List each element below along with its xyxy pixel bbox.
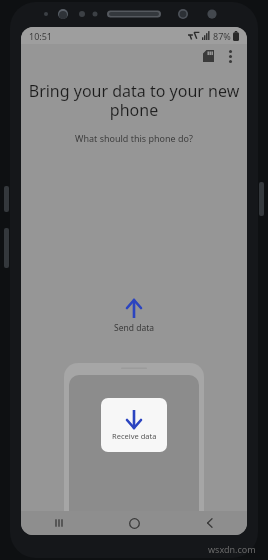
- staticText: Send data: [114, 322, 154, 334]
- staticText: Receive data: [112, 431, 157, 441]
- button[interactable]: Back: [172, 511, 247, 535]
- staticText: wsxdn.com: [208, 543, 256, 555]
- staticText: Bring your data to your new phone: [27, 80, 241, 121]
- staticText: 87%: [213, 30, 231, 42]
- staticText: 10:51: [29, 30, 53, 42]
- button[interactable]: Recents: [21, 511, 97, 535]
- button[interactable]: SD card: [197, 45, 219, 67]
- button[interactable]: Send data: [104, 297, 164, 336]
- button[interactable]: More options: [219, 45, 241, 67]
- button[interactable]: Home: [97, 511, 172, 535]
- staticText: What should this phone do?: [21, 132, 247, 144]
- button[interactable]: Receive data: [101, 398, 167, 452]
